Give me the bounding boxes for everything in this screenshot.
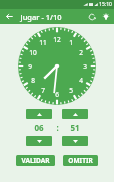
staticText: 51 [70, 122, 80, 133]
staticText: 06 [34, 122, 44, 133]
staticText: 4 [79, 76, 83, 85]
staticText: 5 [69, 86, 73, 95]
staticText: 15:10 [99, 1, 112, 8]
button[interactable]: Restart [85, 10, 98, 23]
staticText: 10 [29, 48, 37, 57]
button[interactable]: Hint [99, 10, 112, 23]
button[interactable]: Increase hours [26, 109, 52, 119]
staticText: 1 [69, 38, 73, 47]
button[interactable]: Increase minutes [62, 109, 88, 119]
staticText: 7 [41, 86, 45, 95]
staticText: Jugar - 1/10 [20, 12, 62, 22]
staticText: 3 [83, 62, 87, 71]
staticText: : [56, 122, 59, 133]
staticText: 9 [28, 62, 32, 71]
staticText: OMITIR [68, 156, 93, 165]
button[interactable]: VALIDAR [16, 155, 55, 166]
button[interactable]: Decrease minutes [62, 136, 88, 146]
staticText: 8 [31, 76, 35, 85]
staticText: VALIDAR [21, 156, 50, 165]
button[interactable]: Decrease hours [26, 136, 52, 146]
staticText: 2 [79, 48, 83, 57]
staticText: 12 [53, 35, 61, 44]
staticText: 6 [55, 90, 59, 99]
button[interactable]: OMITIR [63, 155, 98, 166]
button[interactable]: Back [3, 10, 16, 23]
staticText: 11 [39, 38, 47, 47]
